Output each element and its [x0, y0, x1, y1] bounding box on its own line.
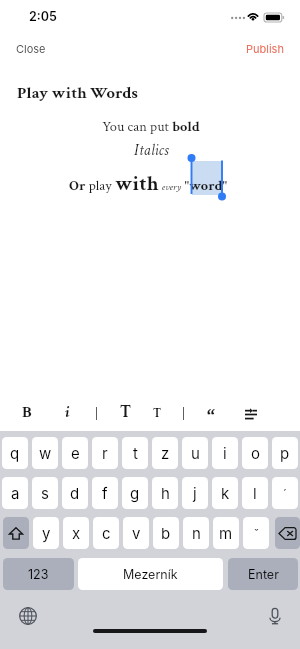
- staticText: a: [11, 484, 20, 502]
- button[interactable]: Mezerník: [78, 558, 223, 590]
- button[interactable]: z: [152, 437, 178, 469]
- staticText: “: [207, 401, 216, 425]
- staticText: Or play with every "word": [69, 170, 228, 197]
- button[interactable]: Publish: [236, 38, 294, 59]
- button[interactable]: 123: [3, 558, 74, 590]
- button[interactable]: d: [62, 477, 88, 509]
- button[interactable]: b: [153, 517, 179, 549]
- staticText: Enter: [248, 567, 279, 582]
- staticText: k: [221, 484, 230, 502]
- staticText: v: [132, 524, 141, 542]
- button[interactable]: Text alignment: [239, 402, 263, 426]
- staticText: Italics: [1, 140, 300, 161]
- staticText: p: [280, 444, 290, 462]
- button[interactable]: i: [55, 400, 79, 424]
- staticText: h: [161, 484, 170, 502]
- staticText: ´: [283, 486, 287, 501]
- button[interactable]: “: [199, 401, 223, 425]
- staticText: 2:05: [29, 9, 57, 24]
- button[interactable]: Dictation: [262, 603, 288, 629]
- staticText: l: [253, 484, 257, 502]
- staticText: d: [70, 484, 80, 502]
- staticText: z: [161, 444, 170, 462]
- staticText: r: [102, 444, 108, 462]
- button[interactable]: ´: [272, 477, 298, 509]
- staticText: m: [219, 524, 233, 542]
- staticText: b: [161, 524, 171, 542]
- staticText: q: [10, 444, 20, 462]
- button[interactable]: f: [92, 477, 118, 509]
- button[interactable]: Shift: [3, 517, 29, 549]
- button[interactable]: a: [2, 477, 28, 509]
- staticText: Mezerník: [123, 567, 178, 582]
- staticText: s: [41, 484, 49, 502]
- staticText: t: [133, 444, 138, 462]
- button[interactable]: r: [92, 437, 118, 469]
- staticText: i: [223, 444, 227, 462]
- button[interactable]: t: [122, 437, 148, 469]
- button[interactable]: n: [183, 517, 209, 549]
- staticText: Play with Words: [17, 82, 138, 104]
- staticText: o: [251, 444, 260, 462]
- button[interactable]: B: [15, 400, 39, 424]
- button[interactable]: q: [2, 437, 28, 469]
- staticText: Close: [16, 42, 46, 55]
- staticText: g: [130, 484, 140, 502]
- button[interactable]: w: [32, 437, 58, 469]
- staticText: i: [65, 402, 70, 423]
- staticText: T: [120, 401, 132, 423]
- button[interactable]: g: [122, 477, 148, 509]
- staticText: You can put bold: [1, 117, 300, 136]
- staticText: w: [39, 444, 52, 462]
- staticText: 123: [28, 567, 49, 582]
- button[interactable]: v: [123, 517, 149, 549]
- button[interactable]: e: [62, 437, 88, 469]
- button[interactable]: l: [242, 477, 268, 509]
- staticText: j: [193, 484, 197, 502]
- staticText: x: [72, 524, 81, 542]
- button[interactable]: ˇ: [243, 517, 269, 549]
- button[interactable]: Next keyboard: [15, 603, 41, 629]
- staticText: e: [71, 444, 80, 462]
- button[interactable]: m: [213, 517, 239, 549]
- staticText: ˇ: [254, 526, 259, 541]
- button[interactable]: i: [212, 437, 238, 469]
- button[interactable]: k: [212, 477, 238, 509]
- staticText: y: [42, 524, 51, 542]
- button[interactable]: T: [145, 401, 169, 425]
- button[interactable]: h: [152, 477, 178, 509]
- button[interactable]: Close: [6, 38, 56, 59]
- staticText: u: [191, 444, 200, 462]
- staticText: f: [102, 484, 108, 502]
- button[interactable]: T: [114, 400, 138, 424]
- button[interactable]: c: [93, 517, 119, 549]
- button[interactable]: u: [182, 437, 208, 469]
- staticText: Publish: [246, 42, 284, 55]
- button[interactable]: p: [272, 437, 298, 469]
- button[interactable]: x: [63, 517, 89, 549]
- staticText: n: [192, 524, 201, 542]
- button[interactable]: y: [33, 517, 59, 549]
- staticText: T: [153, 405, 162, 421]
- button[interactable]: s: [32, 477, 58, 509]
- button[interactable]: o: [242, 437, 268, 469]
- staticText: B: [22, 402, 32, 423]
- button[interactable]: Backspace: [275, 517, 300, 549]
- button[interactable]: j: [182, 477, 208, 509]
- button[interactable]: Enter: [228, 558, 298, 590]
- staticText: c: [102, 524, 111, 542]
